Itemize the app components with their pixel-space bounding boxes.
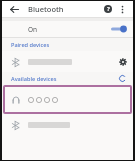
button[interactable] bbox=[5, 87, 130, 112]
button[interactable]: Refresh bbox=[116, 72, 129, 85]
button[interactable]: Device settings bbox=[116, 55, 129, 68]
button[interactable]: More options bbox=[115, 2, 129, 16]
button[interactable]: Help bbox=[101, 2, 115, 16]
staticText: Bluetooth bbox=[28, 4, 64, 14]
button[interactable]: On bbox=[2, 21, 133, 37]
button[interactable]: Device settings bbox=[2, 51, 133, 72]
staticText: ? bbox=[107, 5, 110, 13]
button[interactable]: Back bbox=[7, 2, 22, 17]
staticText: On bbox=[28, 25, 38, 34]
button[interactable] bbox=[2, 114, 133, 135]
staticText: Available devices bbox=[11, 75, 57, 83]
staticText: Paired devices bbox=[11, 41, 50, 49]
